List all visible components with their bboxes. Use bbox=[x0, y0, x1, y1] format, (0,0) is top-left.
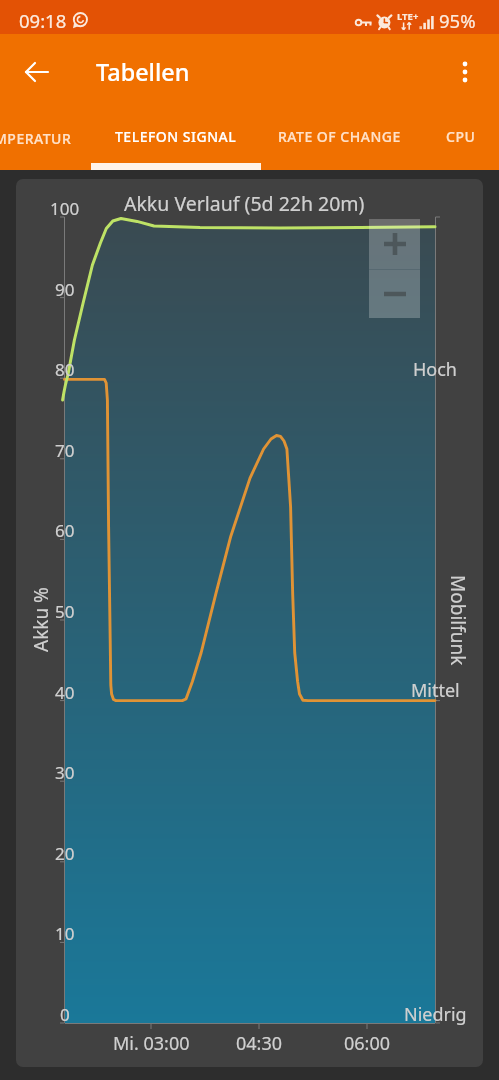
staticText: 20 bbox=[55, 842, 75, 862]
staticText: 70 bbox=[55, 439, 75, 459]
staticText: 04:30 bbox=[236, 1031, 283, 1056]
button[interactable]: Zoom in bbox=[369, 219, 420, 269]
staticText: 80 bbox=[55, 358, 75, 378]
staticText: Akku % bbox=[28, 587, 52, 652]
other: WhatsApp notification bbox=[71, 11, 89, 29]
staticText: CPU bbox=[446, 127, 476, 146]
staticText: 0 bbox=[60, 1003, 70, 1023]
staticText: 50 bbox=[55, 600, 75, 620]
staticText: 40 bbox=[55, 681, 75, 701]
staticText: Mittel bbox=[411, 678, 460, 703]
button[interactable]: RATE OF CHANGE bbox=[258, 109, 420, 163]
staticText: Hoch bbox=[413, 357, 457, 382]
staticText: TELEFON SIGNAL bbox=[115, 127, 237, 146]
staticText: Akku Verlauf (5d 22h 20m) bbox=[124, 190, 365, 217]
button[interactable]: Back bbox=[13, 48, 61, 96]
staticText: 10 bbox=[55, 922, 75, 942]
staticText: 60 bbox=[55, 519, 75, 539]
staticText: MPERATUR bbox=[0, 129, 72, 148]
staticText: 95% bbox=[439, 8, 476, 28]
staticText: Mi. 03:00 bbox=[113, 1031, 190, 1056]
staticText: 06:00 bbox=[344, 1031, 391, 1056]
button[interactable]: More options bbox=[441, 48, 489, 96]
staticText: 90 bbox=[55, 278, 75, 298]
staticText: 100 bbox=[50, 197, 80, 217]
staticText: Tabellen bbox=[96, 56, 190, 88]
staticText: Niedrig bbox=[404, 1002, 467, 1027]
staticText: LTE+ bbox=[397, 10, 419, 23]
staticText: 09:18 bbox=[19, 8, 67, 28]
staticText: RATE OF CHANGE bbox=[278, 127, 401, 146]
button[interactable]: CPU bbox=[423, 109, 499, 163]
staticText: Mobilfunk bbox=[447, 575, 471, 666]
staticText: 30 bbox=[55, 761, 75, 781]
button[interactable]: TELEFON SIGNAL bbox=[91, 109, 261, 163]
button[interactable]: Zoom out bbox=[369, 270, 420, 318]
